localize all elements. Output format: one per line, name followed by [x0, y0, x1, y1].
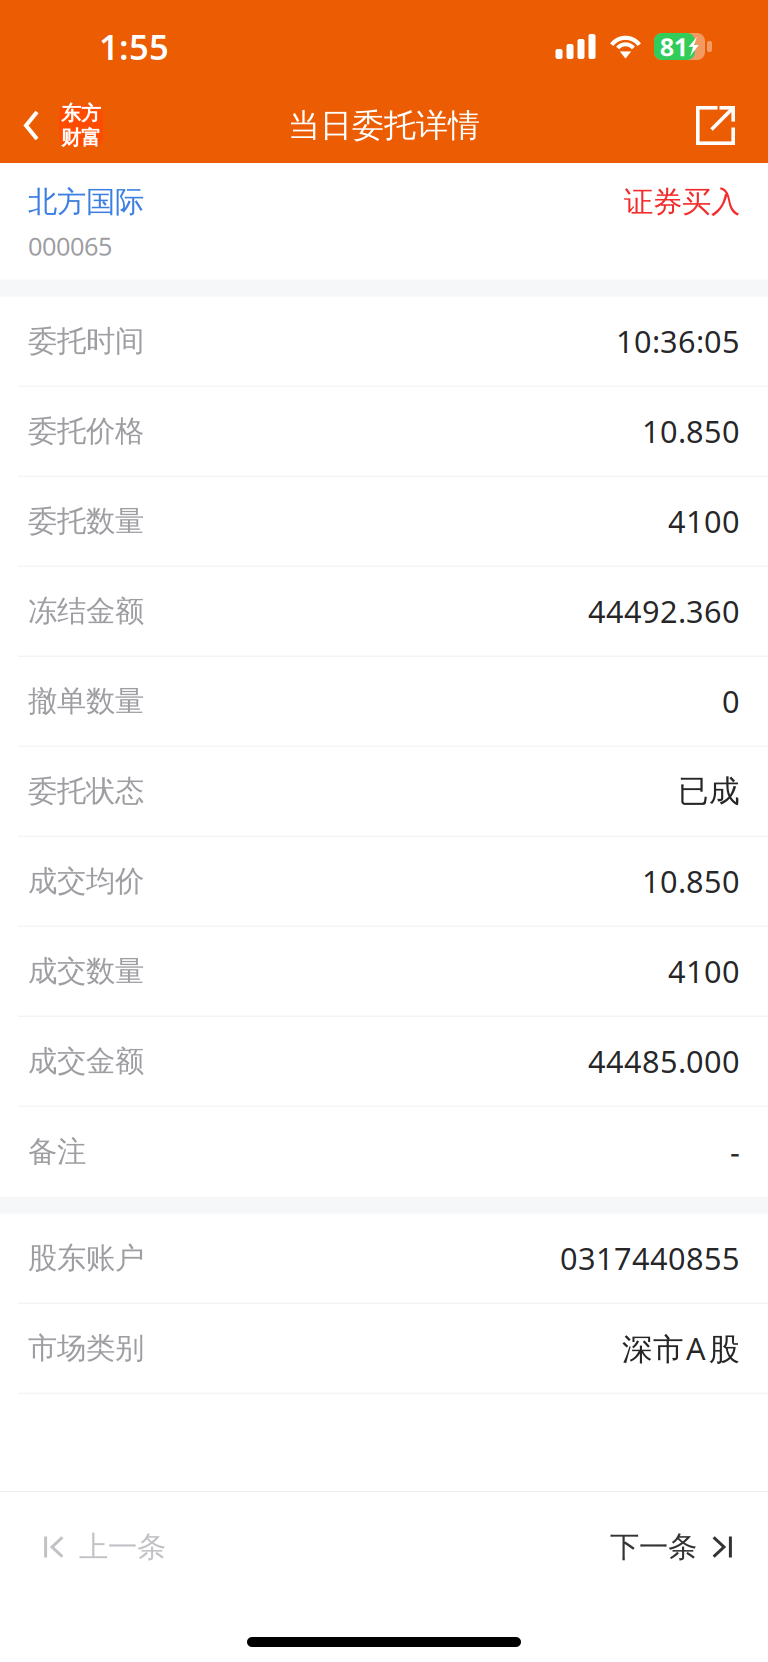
staticText: 1:55 [99, 23, 169, 69]
staticText: 10.850 [642, 861, 740, 901]
staticText: 委托价格 [28, 413, 144, 449]
staticText: 4100 [668, 501, 740, 541]
staticText: 上一条 [79, 1529, 166, 1565]
staticText: 委托状态 [28, 773, 144, 809]
button[interactable]: 上一条 [0, 1492, 196, 1602]
staticText: 成交数量 [28, 953, 144, 989]
staticText: 市场类别 [28, 1330, 144, 1366]
staticText: 冻结金额 [28, 593, 144, 629]
staticText: 10.850 [642, 411, 740, 451]
button[interactable]: Share [676, 88, 768, 163]
staticText: 44492.360 [588, 591, 740, 631]
staticText: - [730, 1131, 740, 1172]
staticText: 备注 [28, 1134, 86, 1170]
staticText: 北方国际 [28, 184, 144, 220]
staticText: 下一条 [610, 1529, 697, 1565]
staticText: 成交金额 [28, 1043, 144, 1079]
staticText: 证券买入 [624, 184, 740, 220]
staticText: 撤单数量 [28, 683, 144, 719]
staticText: 财富 [61, 125, 101, 150]
staticText: 000065 [28, 229, 112, 263]
button[interactable]: 下一条 [580, 1492, 768, 1602]
staticText: 委托数量 [28, 503, 144, 539]
staticText: 44485.000 [588, 1041, 740, 1081]
staticText: 10:36:05 [616, 321, 740, 361]
staticText: 成交均价 [28, 863, 144, 899]
staticText: 已成 [678, 772, 740, 810]
staticText: 当日委托详情 [288, 106, 480, 145]
staticText: 0317440855 [560, 1238, 740, 1278]
staticText: 股东账户 [28, 1240, 144, 1276]
staticText: 4100 [668, 951, 740, 991]
staticText: 深市 A 股 [622, 1328, 740, 1368]
staticText: 0 [722, 681, 740, 721]
staticText: 委托时间 [28, 323, 144, 359]
staticText: 81 [660, 30, 688, 63]
button[interactable]: 东方 [0, 88, 123, 163]
staticText: 东方 [61, 101, 101, 125]
